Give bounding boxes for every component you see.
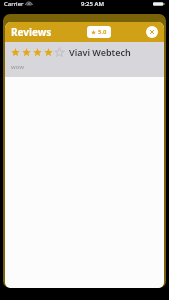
staticText: 9:25 AM	[81, 0, 104, 8]
staticText: Viavi Webtech	[69, 46, 131, 58]
button[interactable]: Viavi Webtech	[5, 42, 164, 77]
staticText: Carrier	[4, 0, 24, 8]
staticText: Reviews	[11, 25, 52, 39]
button[interactable]: Close	[146, 26, 158, 38]
staticText: wow	[11, 63, 24, 71]
staticText: 5.0	[98, 28, 107, 36]
button[interactable]: 5.0	[87, 26, 111, 38]
